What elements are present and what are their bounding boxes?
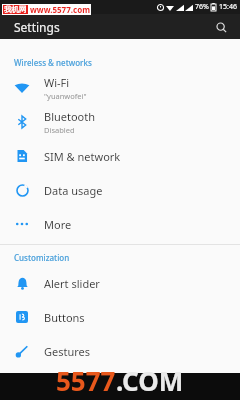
staticText: Wireless & networks xyxy=(14,57,92,68)
button[interactable]: Gestures xyxy=(0,334,240,368)
staticText: SIM & network xyxy=(44,149,121,164)
staticText: Disabled xyxy=(44,125,75,135)
staticText: Alert slider xyxy=(44,276,100,291)
staticText: 15:46 xyxy=(219,2,237,12)
staticText: Settings xyxy=(14,19,60,35)
button[interactable]: Buttons xyxy=(0,300,240,334)
staticText: More xyxy=(44,217,72,232)
button[interactable]: Wi-Fi xyxy=(0,71,240,105)
staticText: www.5577.com xyxy=(30,4,90,15)
staticText: .COM xyxy=(116,363,184,398)
button[interactable]: More xyxy=(0,207,240,241)
button[interactable]: Search xyxy=(210,16,232,38)
button[interactable]: Data usage xyxy=(0,173,240,207)
staticText: 76% xyxy=(195,2,209,12)
staticText: Gestures xyxy=(44,344,91,359)
staticText: 我机网 xyxy=(4,5,27,14)
staticText: 5577 xyxy=(56,363,116,398)
staticText: Buttons xyxy=(44,310,85,325)
staticText: Wi-Fi xyxy=(44,75,70,90)
staticText: "yuanwofei" xyxy=(44,91,87,101)
staticText: Data usage xyxy=(44,183,103,198)
staticText: Bluetooth xyxy=(44,109,96,124)
button[interactable]: Alert slider xyxy=(0,266,240,300)
button[interactable]: SIM & network xyxy=(0,139,240,173)
staticText: Customization xyxy=(14,252,70,263)
button[interactable]: Bluetooth xyxy=(0,105,240,139)
